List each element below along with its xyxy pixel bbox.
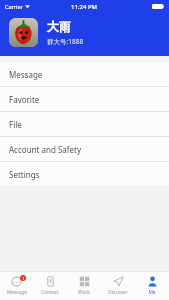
staticText: Account and Safety [9, 144, 82, 155]
staticText: Discover [108, 289, 128, 296]
staticText: 1 [22, 276, 25, 281]
button[interactable]: Work [67, 272, 101, 300]
staticText: Favorite [9, 94, 40, 105]
staticText: 11:24 PM [71, 3, 98, 11]
button[interactable]: Message [0, 62, 169, 86]
staticText: Message [7, 289, 27, 296]
staticText: Carrier [5, 3, 23, 10]
staticText: Work [78, 289, 90, 296]
button[interactable]: Favorite [0, 87, 169, 111]
staticText: 群大号:1888 [47, 37, 84, 46]
staticText: 大雨 [47, 19, 71, 34]
button[interactable]: Settings [0, 162, 169, 186]
staticText: Contact [41, 289, 59, 296]
button[interactable]: Message [0, 272, 33, 300]
button[interactable]: Contact [33, 272, 67, 300]
staticText: Me [148, 289, 156, 296]
button[interactable]: 大雨 [0, 13, 169, 56]
staticText: Settings [9, 169, 40, 180]
button[interactable]: Me [135, 272, 169, 300]
button[interactable]: File [0, 112, 169, 136]
staticText: Message [9, 69, 43, 80]
button[interactable]: Account and Safety [0, 137, 169, 161]
staticText: File [9, 119, 22, 130]
button[interactable]: Discover [101, 272, 135, 300]
